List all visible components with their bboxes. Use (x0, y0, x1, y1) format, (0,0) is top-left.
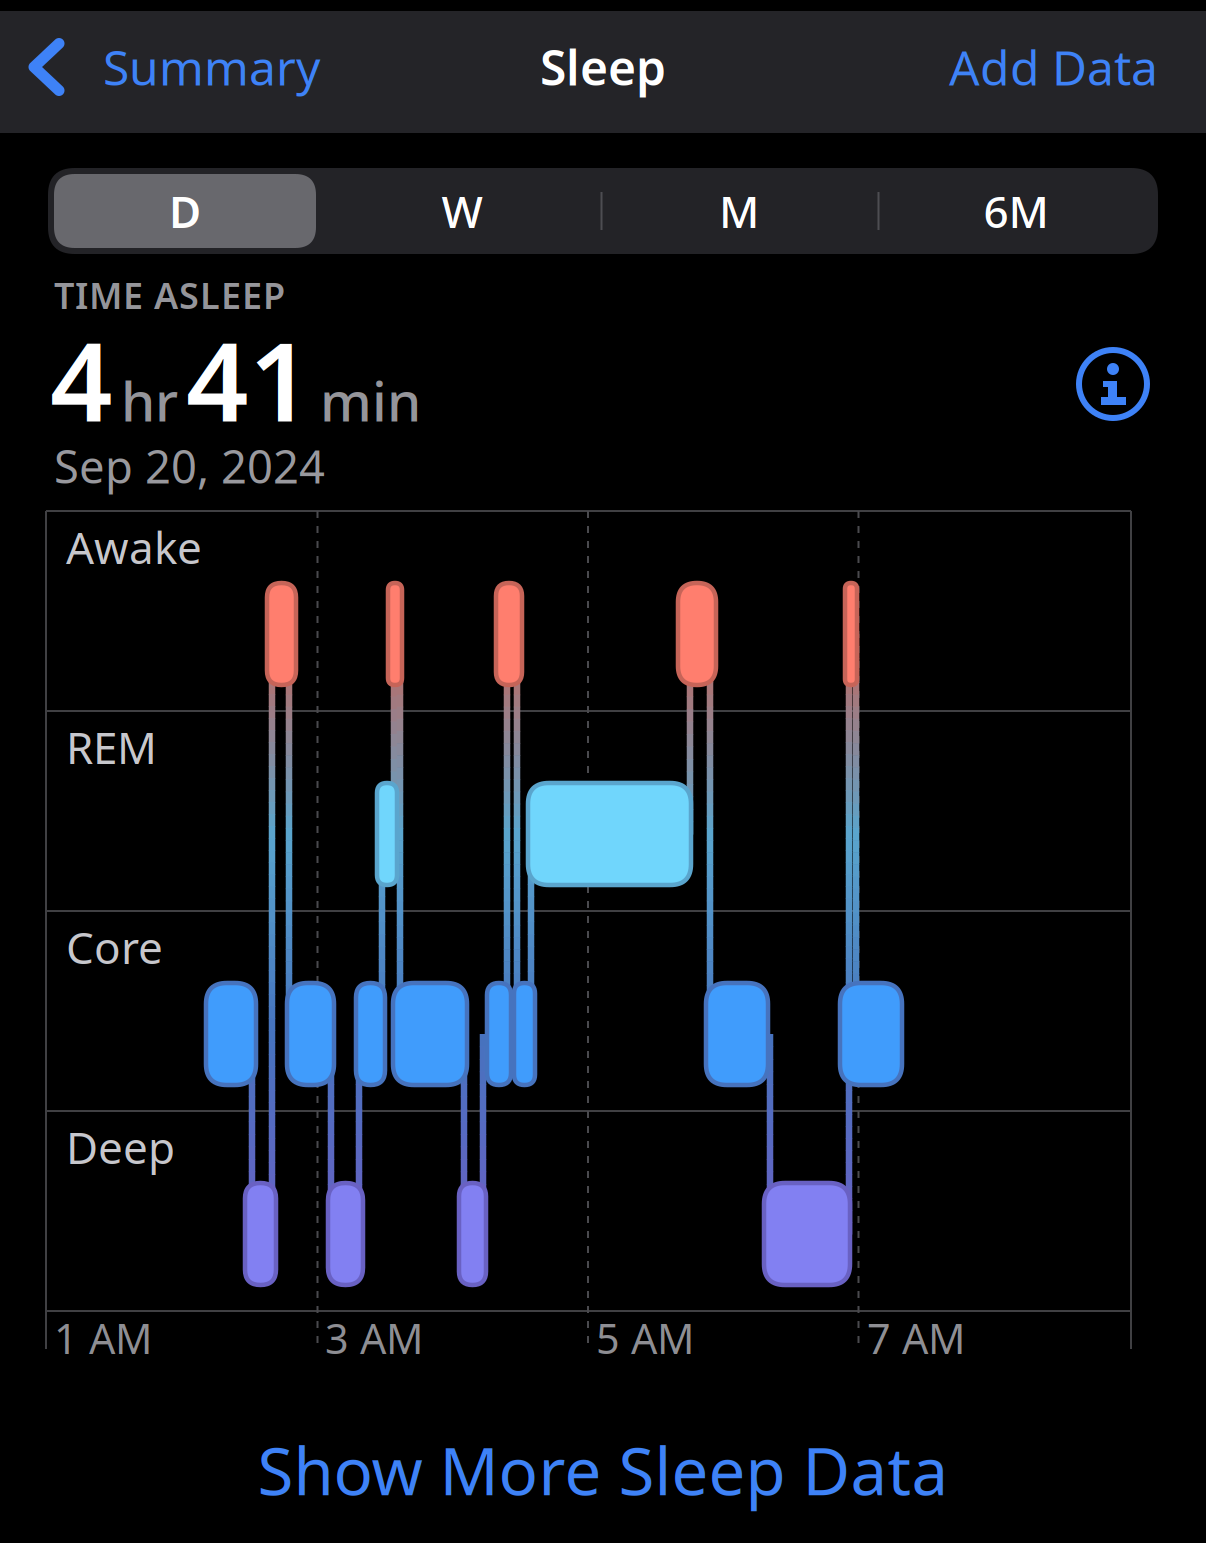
staticText: 6M (983, 182, 1048, 240)
staticText: Deep (66, 1118, 175, 1176)
button[interactable]: More Information (1078, 349, 1148, 419)
staticText: 3 AM (325, 1311, 423, 1365)
button[interactable]: Show More Sleep Data (257, 1427, 948, 1513)
button[interactable]: 6M (885, 174, 1147, 248)
staticText: Summary (103, 35, 320, 99)
staticText: Core (66, 918, 163, 976)
staticText: hr (121, 364, 178, 436)
staticText: min (320, 364, 421, 436)
button[interactable]: D (54, 174, 316, 248)
staticText: Show More Sleep Data (257, 1427, 948, 1513)
staticText: M (719, 182, 759, 240)
staticText: Add Data (949, 35, 1158, 99)
staticText: D (169, 182, 201, 240)
staticText: TIME ASLEEP (54, 271, 285, 319)
staticText: 4 (50, 306, 113, 452)
staticText: 5 AM (596, 1311, 694, 1365)
staticText: REM (66, 718, 157, 776)
staticText: 1 AM (54, 1311, 152, 1365)
staticText: Sleep (540, 35, 666, 99)
staticText: 41 (186, 306, 312, 452)
staticText: Awake (66, 518, 202, 576)
button[interactable]: Add Data (758, 35, 1158, 99)
button[interactable]: M (608, 174, 870, 248)
button[interactable]: Summary (28, 35, 320, 99)
staticText: 7 AM (867, 1311, 965, 1365)
staticText: W (441, 182, 482, 240)
staticText: Sep 20, 2024 (54, 436, 325, 496)
button[interactable]: W (331, 174, 593, 248)
